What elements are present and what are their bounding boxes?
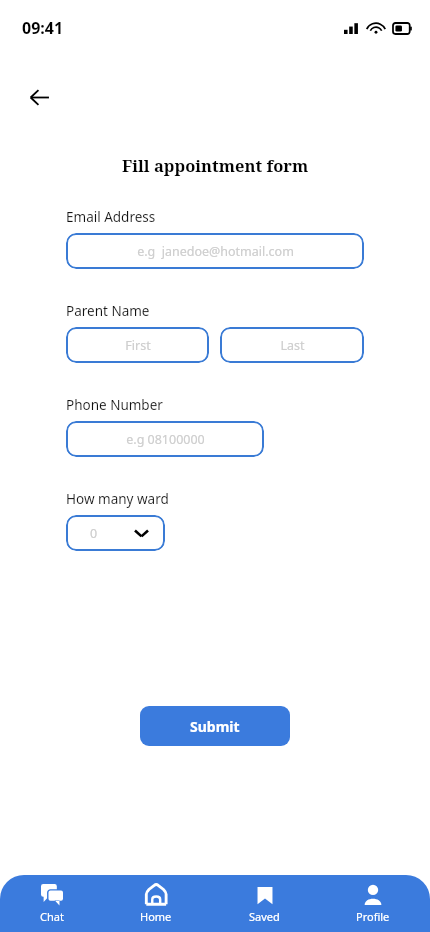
staticText: How many ward (66, 490, 169, 508)
staticText: e.g 08100000 (126, 431, 205, 448)
other: Home (144, 883, 168, 907)
button[interactable]: Submit (140, 706, 290, 746)
button[interactable]: e.g janedoe@hotmail.com (66, 233, 364, 269)
staticText: First (125, 337, 151, 354)
button[interactable]: Home (140, 881, 172, 926)
button[interactable]: Profile (356, 881, 390, 926)
staticText: Profile (356, 909, 390, 924)
other: Saved (253, 883, 277, 907)
button[interactable]: First (66, 327, 209, 363)
button[interactable]: Last (220, 327, 364, 363)
staticText: Parent Name (66, 302, 150, 320)
button[interactable]: e.g 08100000 (66, 421, 264, 457)
staticText: Submit (190, 717, 240, 736)
staticText: Email Address (66, 208, 156, 226)
other: Profile (361, 883, 385, 907)
staticText: 09:41 (22, 17, 64, 39)
staticText: Chat (40, 909, 64, 924)
staticText: Home (140, 909, 172, 924)
staticText: Fill appointment form (122, 154, 309, 176)
button[interactable]: 0 (66, 515, 165, 551)
other: Chat (40, 883, 64, 907)
staticText: 0 (90, 525, 98, 542)
staticText: e.g janedoe@hotmail.com (137, 243, 294, 260)
button[interactable]: Saved (249, 881, 280, 926)
staticText: Saved (249, 909, 280, 924)
button[interactable]: Back (22, 80, 56, 114)
button[interactable]: Chat (40, 881, 64, 926)
staticText: Phone Number (66, 396, 163, 414)
staticText: Last (280, 337, 305, 354)
